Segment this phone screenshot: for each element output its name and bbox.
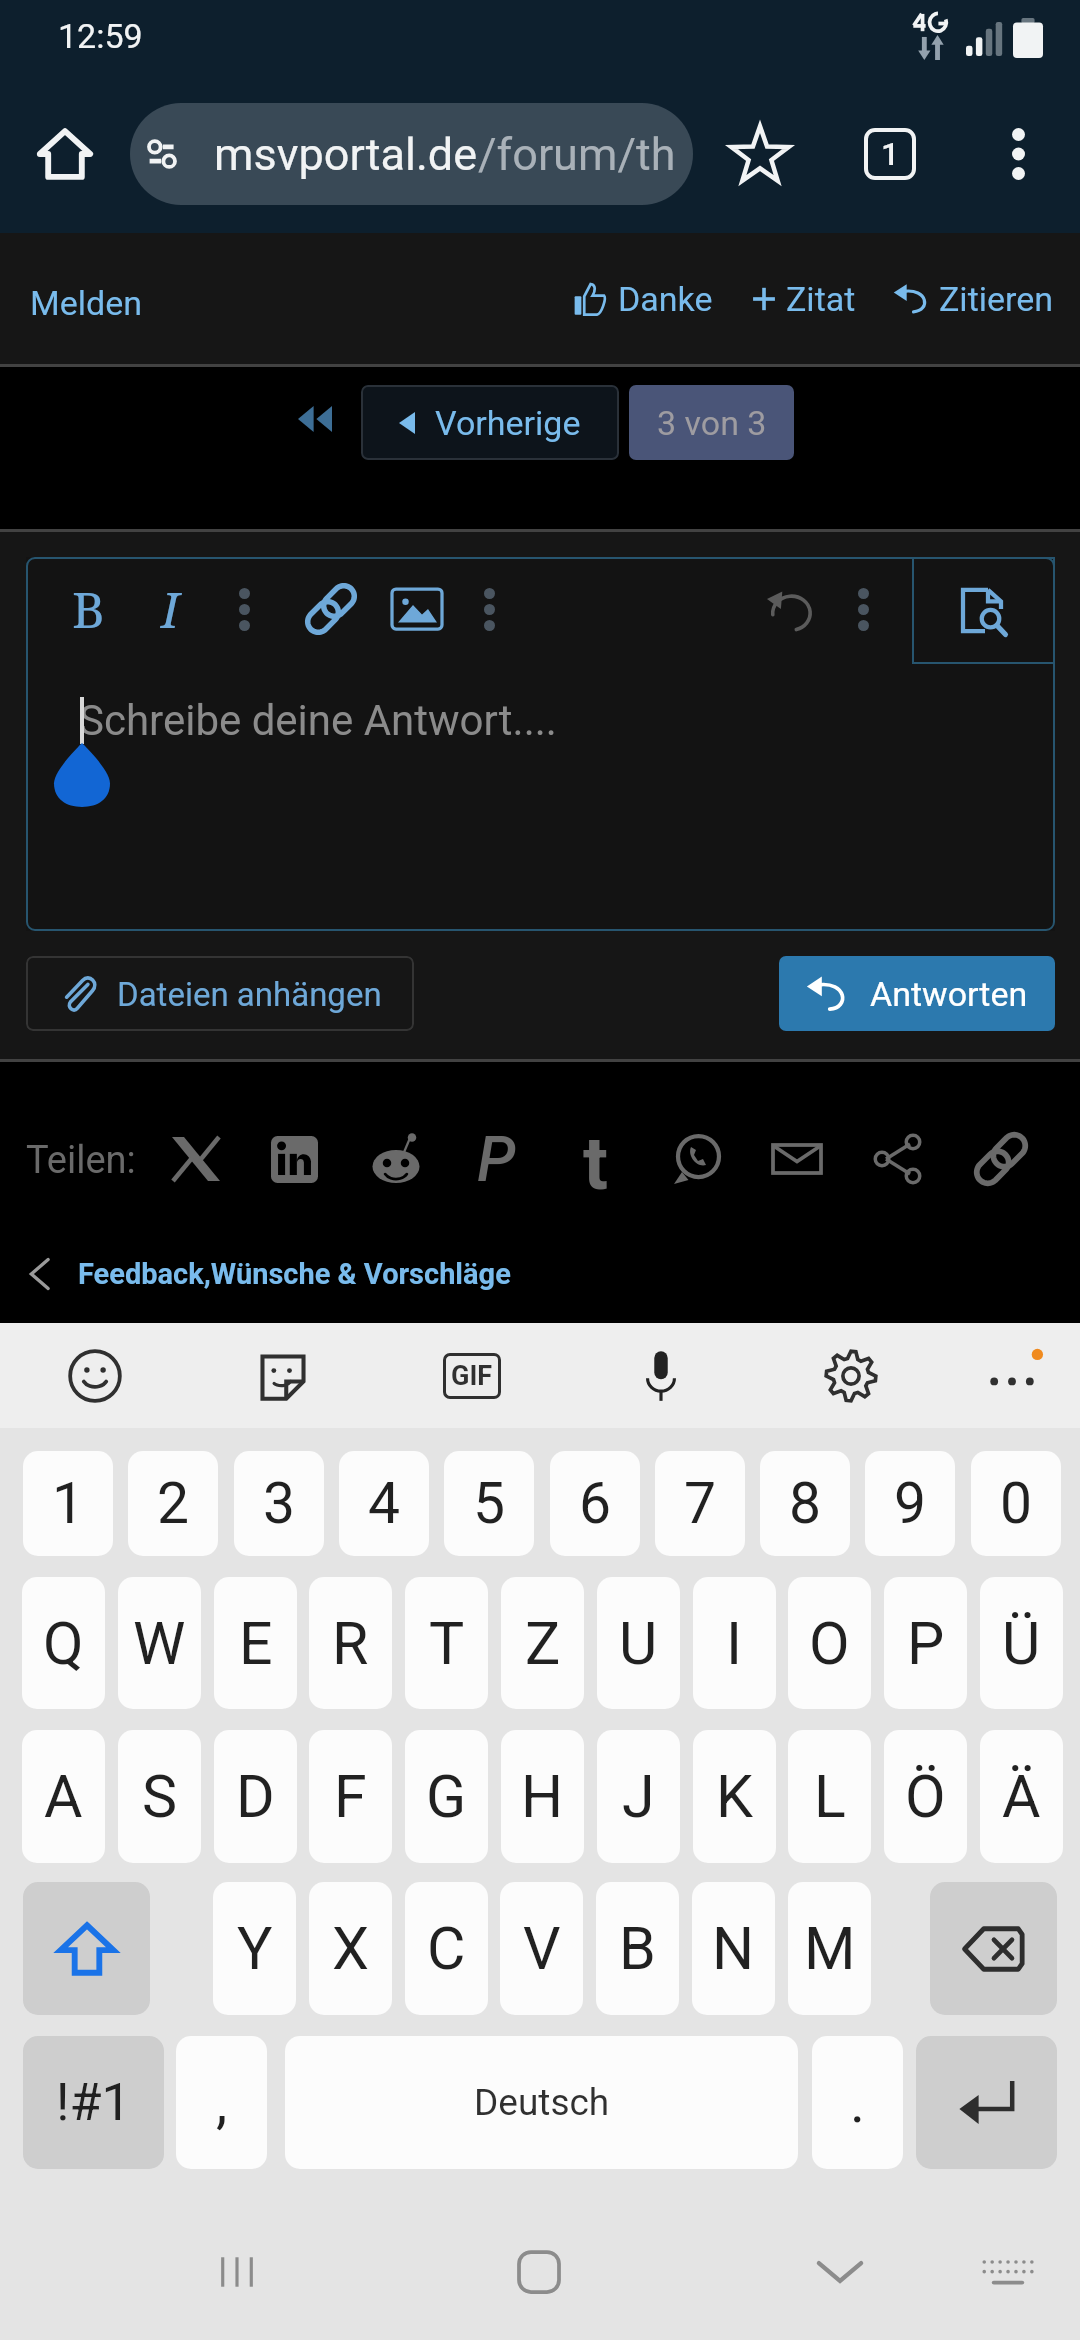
staticText: E bbox=[239, 1609, 273, 1678]
button[interactable]: 3 von 3 bbox=[629, 385, 794, 460]
button[interactable]: Zitat bbox=[747, 257, 860, 341]
button[interactable]: Home bbox=[489, 2224, 589, 2320]
button[interactable]: Insert link bbox=[301, 563, 361, 655]
button[interactable]: Share on WhatsApp bbox=[657, 1120, 737, 1198]
button[interactable]: Share on LinkedIn bbox=[254, 1120, 334, 1198]
button[interactable]: W bbox=[118, 1577, 201, 1709]
button[interactable]: More text options bbox=[214, 563, 274, 655]
button[interactable]: 0 bbox=[971, 1451, 1061, 1556]
button[interactable]: Undo bbox=[760, 563, 820, 655]
staticText: F bbox=[334, 1762, 367, 1831]
button[interactable]: Tabs bbox=[848, 96, 932, 212]
button[interactable]: F bbox=[309, 1730, 392, 1863]
button[interactable]: H bbox=[501, 1730, 584, 1863]
button[interactable]: . bbox=[812, 2036, 903, 2169]
staticText: 2 bbox=[157, 1470, 190, 1537]
button[interactable]: L bbox=[788, 1730, 871, 1863]
button[interactable]: P bbox=[884, 1577, 967, 1709]
button[interactable]: Copy link bbox=[961, 1120, 1041, 1198]
staticText: Dateien anhängen bbox=[117, 975, 382, 1014]
button[interactable]: Voice input bbox=[609, 1323, 713, 1428]
button[interactable]: J bbox=[597, 1730, 680, 1863]
button[interactable]: Ü bbox=[980, 1577, 1063, 1709]
button[interactable]: 2 bbox=[128, 1451, 218, 1556]
button[interactable]: Bold bbox=[58, 563, 118, 655]
button[interactable]: Shift bbox=[23, 1882, 150, 2015]
button[interactable]: K bbox=[693, 1730, 776, 1863]
button[interactable]: Danke bbox=[570, 257, 717, 341]
button[interactable]: G bbox=[405, 1730, 488, 1863]
button[interactable]: Share bbox=[858, 1120, 938, 1198]
button[interactable]: Share on X bbox=[156, 1120, 236, 1198]
button[interactable]: V bbox=[500, 1882, 583, 2015]
button[interactable]: 5 bbox=[444, 1451, 534, 1556]
button[interactable]: First page bbox=[286, 390, 344, 448]
button[interactable]: More options bbox=[833, 563, 893, 655]
button[interactable]: D bbox=[214, 1730, 297, 1863]
button[interactable]: 9 bbox=[865, 1451, 955, 1556]
button[interactable]: !#1 bbox=[23, 2036, 164, 2169]
button[interactable]: Share via Email bbox=[757, 1120, 837, 1198]
button[interactable]: Preview bbox=[912, 557, 1055, 664]
button[interactable]: 8 bbox=[760, 1451, 850, 1556]
button[interactable]: Q bbox=[22, 1577, 105, 1709]
button[interactable]: More options bbox=[978, 96, 1058, 212]
button[interactable]: Dateien anhängen bbox=[26, 956, 414, 1031]
button[interactable]: Y bbox=[213, 1882, 296, 2015]
button[interactable]: B bbox=[596, 1882, 679, 2015]
button[interactable]: Antworten bbox=[779, 956, 1055, 1031]
button[interactable]: A bbox=[22, 1730, 105, 1863]
button[interactable]: T bbox=[405, 1577, 488, 1709]
button[interactable]: Share on Reddit bbox=[356, 1120, 436, 1198]
button[interactable]: More bbox=[960, 1323, 1064, 1428]
button[interactable]: Melden bbox=[8, 257, 164, 349]
button[interactable]: N bbox=[692, 1882, 775, 2015]
button[interactable]: , bbox=[176, 2036, 267, 2169]
button[interactable]: C bbox=[405, 1882, 488, 2015]
button[interactable]: Feedback,Wünsche & Vorschläge bbox=[20, 1243, 519, 1305]
staticText: GIF bbox=[451, 1360, 493, 1392]
button[interactable]: S bbox=[118, 1730, 201, 1863]
button[interactable]: GIF bbox=[420, 1323, 524, 1428]
button[interactable]: Settings bbox=[799, 1323, 903, 1428]
button[interactable]: Backspace bbox=[930, 1882, 1057, 2015]
button[interactable]: Z bbox=[501, 1577, 584, 1709]
button[interactable]: 7 bbox=[655, 1451, 745, 1556]
button[interactable]: 3 bbox=[234, 1451, 324, 1556]
button[interactable]: Recents bbox=[187, 2224, 287, 2320]
button[interactable]: msvportal.de bbox=[130, 103, 693, 205]
button[interactable]: Emoji bbox=[43, 1323, 147, 1428]
button[interactable]: X bbox=[309, 1882, 392, 2015]
staticText: 1 bbox=[881, 135, 900, 173]
button[interactable]: Home bbox=[26, 96, 104, 212]
button[interactable]: 1 bbox=[23, 1451, 113, 1556]
button[interactable]: Ö bbox=[884, 1730, 967, 1863]
button[interactable]: O bbox=[788, 1577, 871, 1709]
button[interactable]: More insert options bbox=[459, 563, 519, 655]
staticText: /forum/th bbox=[478, 128, 676, 181]
button[interactable]: R bbox=[309, 1577, 392, 1709]
button[interactable]: I bbox=[693, 1577, 776, 1709]
button[interactable]: E bbox=[214, 1577, 297, 1709]
staticText: B bbox=[72, 575, 105, 643]
button[interactable]: Hide keyboard bbox=[790, 2224, 890, 2320]
button[interactable]: M bbox=[788, 1882, 871, 2015]
button[interactable]: U bbox=[597, 1577, 680, 1709]
staticText: M bbox=[804, 1914, 856, 1983]
button[interactable]: Share on Tumblr bbox=[556, 1120, 636, 1198]
staticText: Melden bbox=[30, 283, 142, 323]
button[interactable]: 4 bbox=[339, 1451, 429, 1556]
staticText: I bbox=[726, 1609, 743, 1678]
button[interactable]: Share on Pinterest bbox=[456, 1120, 536, 1198]
button[interactable]: Zitieren bbox=[889, 257, 1058, 341]
button[interactable]: Enter bbox=[916, 2036, 1057, 2169]
button[interactable]: Insert image bbox=[387, 563, 447, 655]
button[interactable]: Ä bbox=[980, 1730, 1063, 1863]
button[interactable]: Change keyboard bbox=[958, 2224, 1058, 2320]
button[interactable]: Stickers bbox=[231, 1323, 335, 1428]
button[interactable]: Vorherige bbox=[361, 385, 619, 460]
button[interactable]: Deutsch bbox=[285, 2036, 798, 2169]
button[interactable]: Bookmark bbox=[718, 96, 802, 212]
button[interactable]: 6 bbox=[550, 1451, 640, 1556]
button[interactable]: Italic bbox=[140, 563, 200, 655]
